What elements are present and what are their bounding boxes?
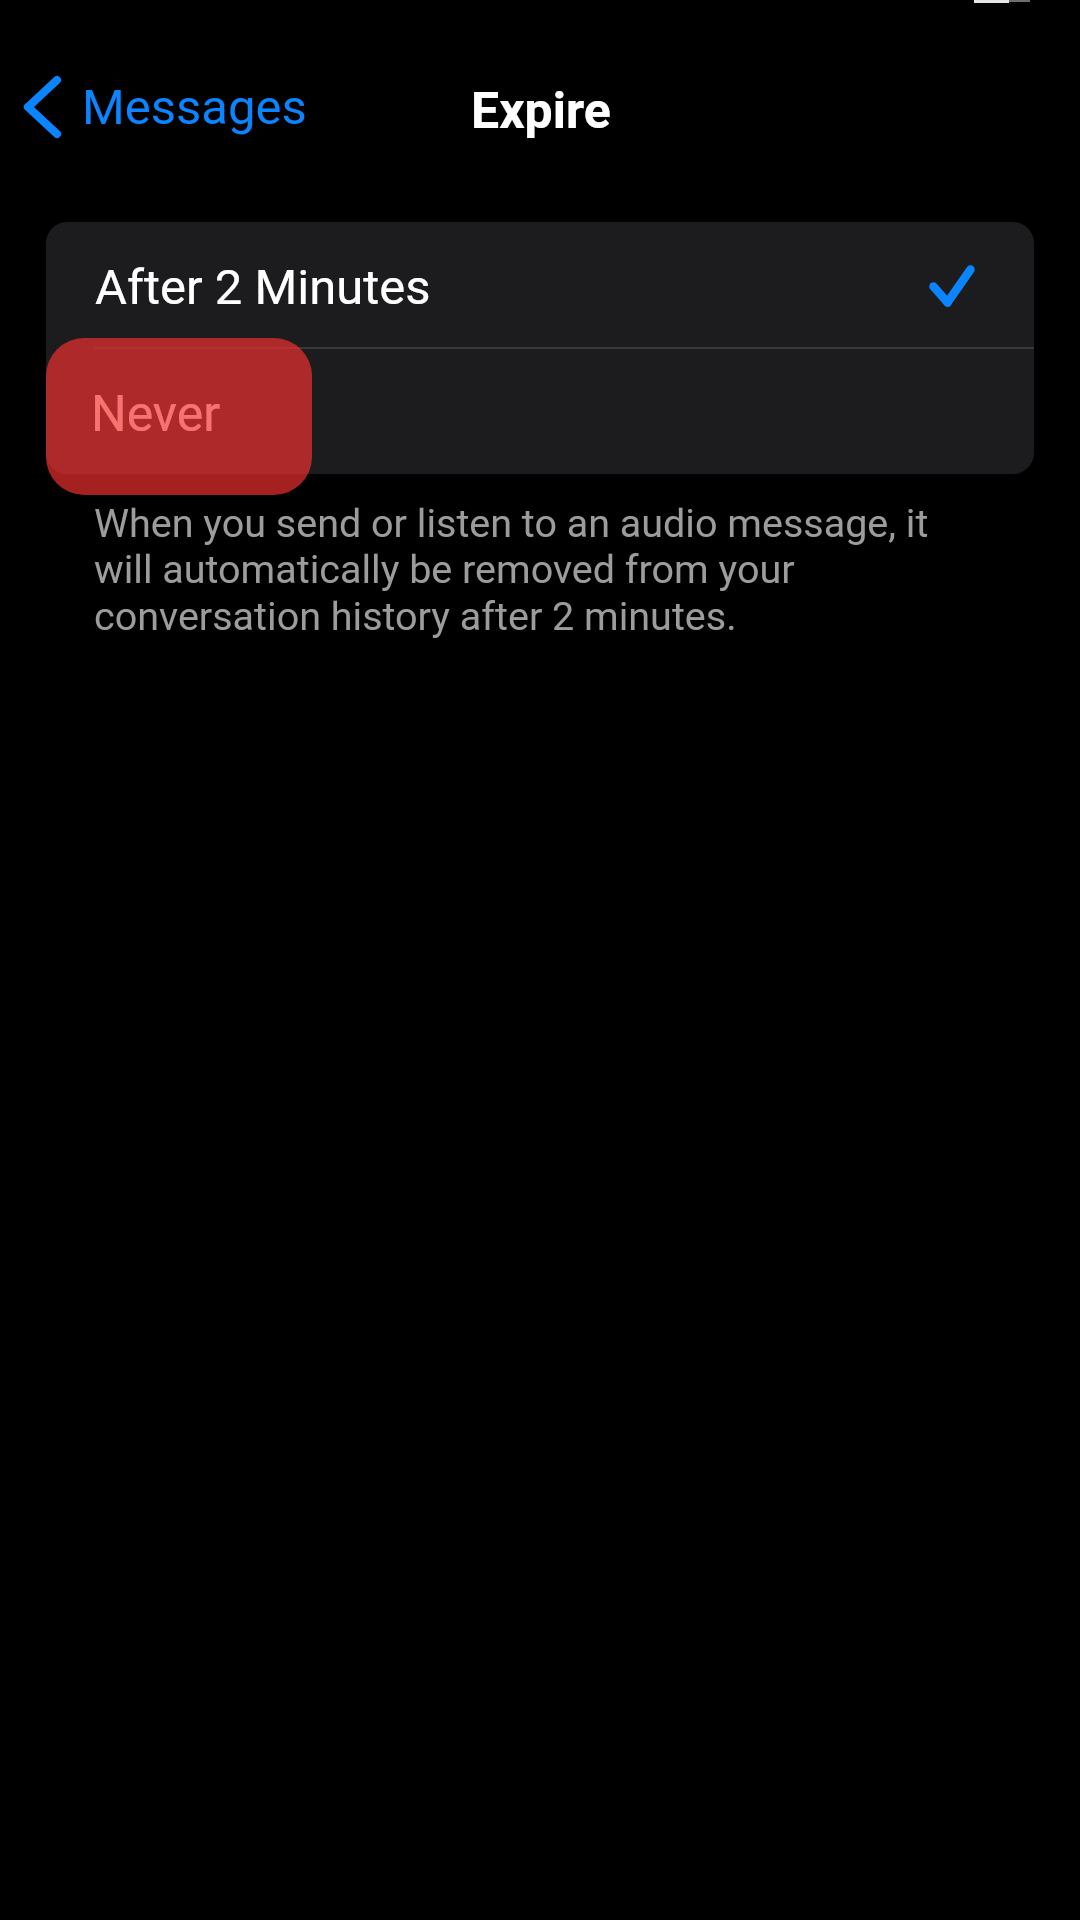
staticText: Messages (82, 79, 307, 136)
button[interactable]: Never (46, 348, 1034, 474)
staticText: After 2 Minutes (95, 259, 431, 316)
staticText: Never (91, 385, 221, 444)
staticText: When you send or listen to an audio mess… (94, 500, 964, 639)
staticText: Expire (471, 82, 611, 141)
button[interactable]: After 2 Minutes (46, 222, 1034, 348)
button[interactable]: Back to Messages (11, 61, 321, 153)
